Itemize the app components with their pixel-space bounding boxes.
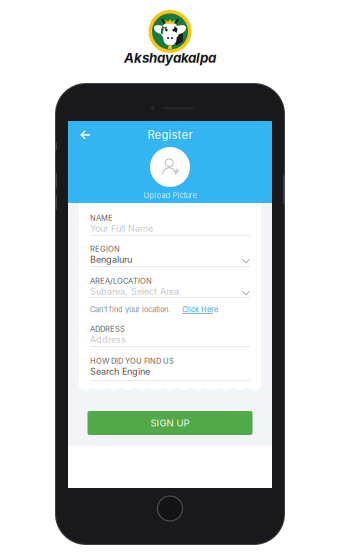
button[interactable]: REGION (90, 245, 250, 267)
staticText: Your Full Name (90, 223, 153, 234)
staticText: Akshayakalpa (124, 50, 216, 66)
staticText: Subarea, Select Area (90, 286, 179, 297)
button[interactable]: Upload Picture (68, 147, 272, 200)
staticText: Upload Picture (143, 191, 196, 200)
button[interactable]: AREA/LOCATION (90, 277, 250, 298)
staticText: Register (147, 128, 192, 142)
staticText: Search Engine (90, 366, 150, 377)
staticText: ADDRESS (90, 324, 125, 334)
button[interactable]: NAME (90, 214, 250, 236)
button[interactable]: Click Here (182, 305, 222, 315)
staticText: AREA/LOCATION (90, 276, 152, 286)
button[interactable]: ADDRESS (90, 325, 250, 347)
staticText: NAME (90, 213, 113, 223)
button[interactable]: Back (74, 128, 96, 142)
staticText: REGION (90, 244, 120, 254)
staticText: Click Here (182, 305, 218, 314)
staticText: Address (90, 334, 126, 345)
button[interactable]: HOW DID YOU FIND US (90, 357, 250, 381)
staticText: HOW DID YOU FIND US (90, 356, 174, 366)
staticText: Can't find your location. (90, 305, 170, 314)
staticText: SIGN UP (150, 417, 189, 429)
button[interactable]: SIGN UP (87, 411, 252, 435)
staticText: Bengaluru (90, 254, 132, 265)
